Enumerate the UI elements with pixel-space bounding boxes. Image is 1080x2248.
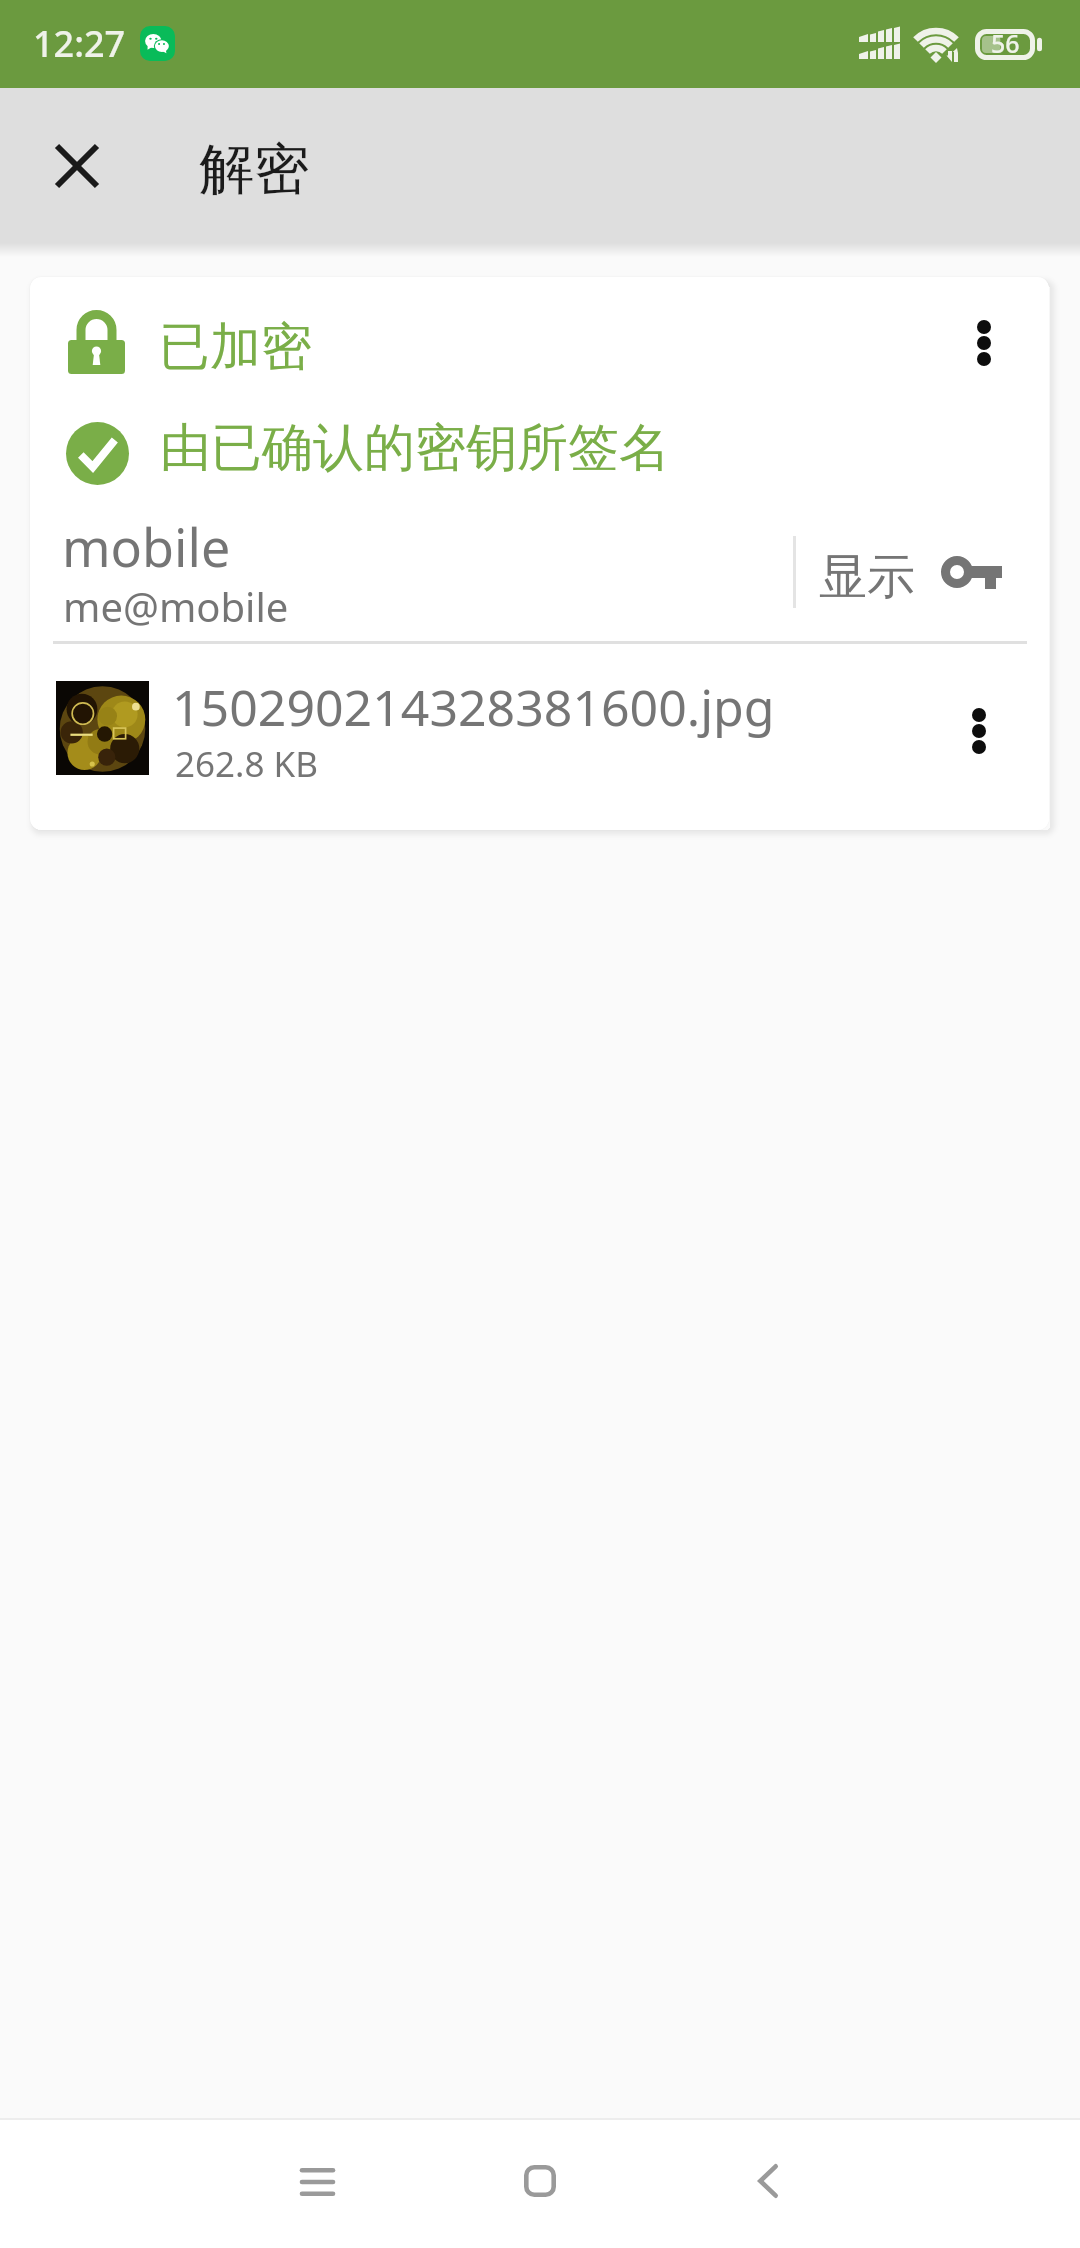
staticText: 显示 (819, 547, 915, 607)
button[interactable]: Recents (247, 2118, 387, 2248)
button[interactable]: 显示 (796, 521, 1049, 623)
button[interactable]: 已加密 (30, 277, 910, 395)
button[interactable]: Home (470, 2118, 610, 2248)
button[interactable]: Close (27, 116, 127, 216)
staticText: 12:27 (33, 19, 126, 68)
button[interactable]: File options (924, 685, 1034, 777)
button[interactable]: 150290214328381600.jpg (30, 644, 910, 830)
staticText: 56 (991, 26, 1020, 57)
staticText: 由已确认的密钥所签名 (160, 416, 670, 480)
staticText: 解密 (199, 135, 309, 204)
staticText: 150290214328381600.jpg (172, 673, 775, 741)
staticText: mobile (62, 511, 231, 582)
staticText: 已加密 (159, 315, 312, 379)
button[interactable]: More options (929, 297, 1039, 389)
staticText: me@mobile (63, 579, 289, 633)
button[interactable]: mobile (30, 505, 790, 641)
staticText: 262.8 KB (175, 740, 318, 788)
button[interactable]: Back (697, 2118, 837, 2248)
button[interactable]: 由已确认的密钥所签名 (30, 395, 910, 505)
